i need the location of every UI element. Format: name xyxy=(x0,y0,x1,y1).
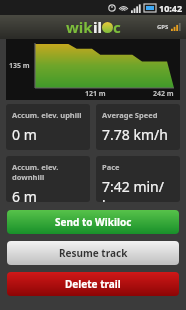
staticText: 135 m xyxy=(9,61,30,71)
button[interactable]: Pace xyxy=(96,156,180,202)
staticText: Average Speed xyxy=(102,110,158,120)
staticText: Send to Wikiloc xyxy=(55,215,132,229)
staticText: Accum. elev. uphill xyxy=(12,110,82,120)
staticText: c xyxy=(113,17,121,37)
staticText: 7.78 km/h xyxy=(102,125,168,144)
staticText: wik xyxy=(66,17,93,37)
staticText: Resume track xyxy=(59,246,128,260)
staticText: 10:42 xyxy=(159,2,183,14)
staticText: 242 m xyxy=(153,89,174,99)
staticText: Delete trail xyxy=(65,277,121,291)
button[interactable]: Average Speed xyxy=(96,104,180,150)
button[interactable]: GPS status xyxy=(157,23,181,31)
staticText: il xyxy=(93,17,102,37)
button[interactable]: Accum. elev. uphill xyxy=(6,104,90,150)
staticText: Pace xyxy=(102,162,120,172)
staticText: 121 m xyxy=(85,89,106,99)
staticText: 7:42 min/km xyxy=(102,177,180,202)
staticText: Accum. elev. downhill xyxy=(12,162,90,182)
button[interactable]: Delete trail xyxy=(7,272,179,296)
button[interactable]: Resume track xyxy=(7,241,179,265)
staticText: GPS xyxy=(157,23,169,31)
button[interactable]: Accum. elev. downhill xyxy=(6,156,90,202)
staticText: 0 m xyxy=(12,125,37,144)
staticText: 6 m xyxy=(12,187,37,202)
button[interactable]: Send to Wikiloc xyxy=(7,210,179,234)
